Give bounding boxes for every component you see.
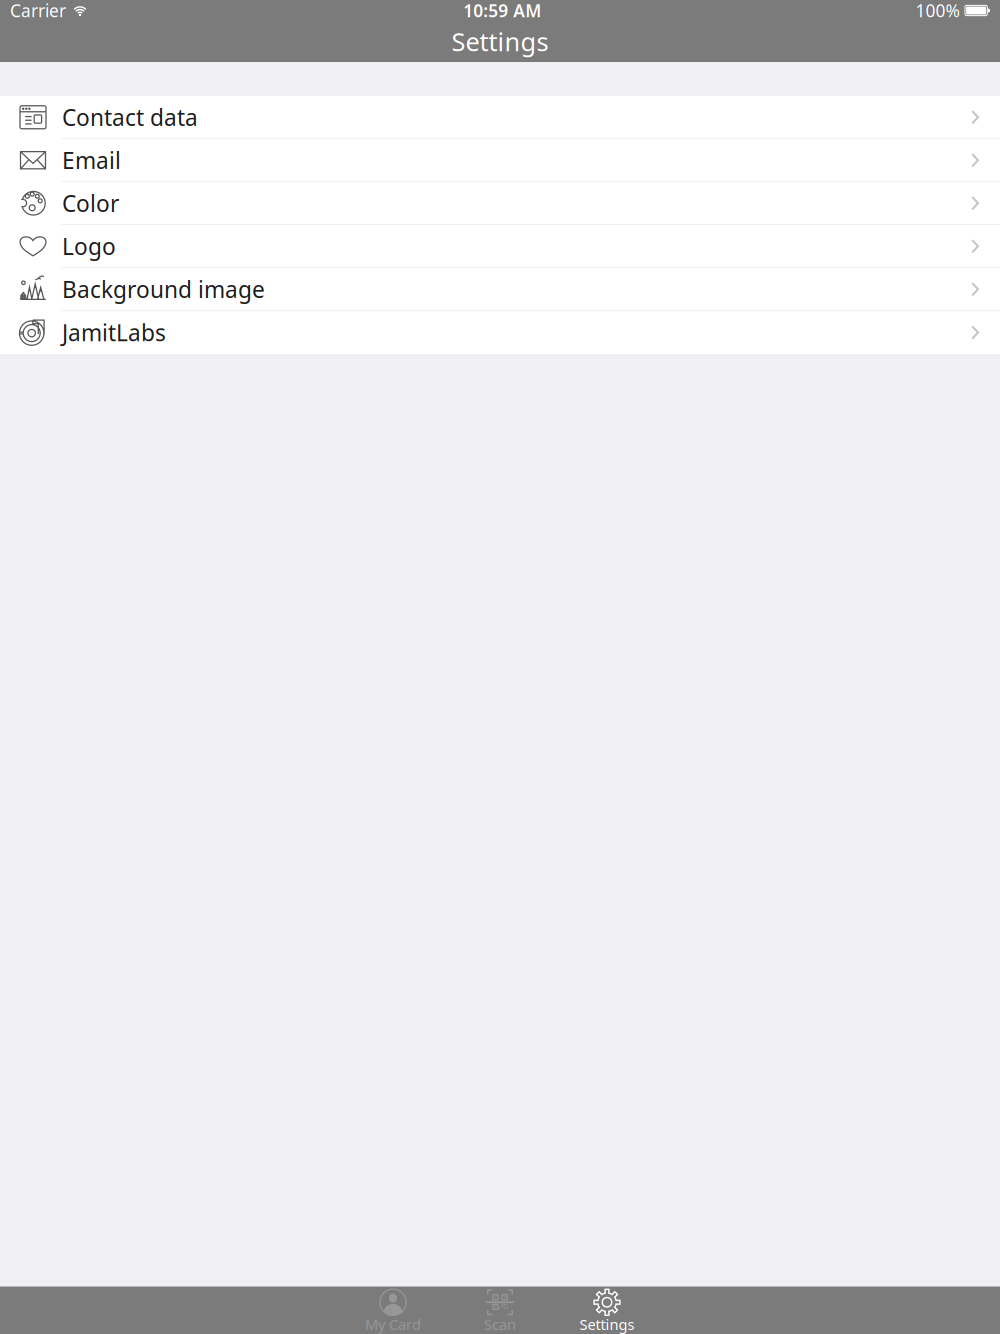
button[interactable]: My Card — [339, 1286, 446, 1334]
button[interactable]: Logo — [0, 225, 1000, 268]
button[interactable]: JamitLabs — [0, 311, 1000, 354]
staticText: Background image — [62, 274, 265, 304]
staticText: Scan — [484, 1314, 516, 1334]
staticText: Contact data — [62, 102, 198, 132]
staticText: 100% — [915, 0, 959, 22]
staticText: Carrier — [10, 0, 66, 22]
staticText: Logo — [62, 231, 116, 261]
button[interactable]: Settings — [553, 1286, 660, 1334]
staticText: My Card — [365, 1314, 421, 1334]
staticText: Settings — [451, 25, 548, 58]
button[interactable]: Color — [0, 182, 1000, 225]
button[interactable]: Contact data — [0, 96, 1000, 139]
staticText: Settings — [579, 1314, 634, 1334]
button[interactable]: Background image — [0, 268, 1000, 311]
staticText: Color — [62, 188, 119, 218]
button[interactable]: Email — [0, 139, 1000, 182]
staticText: 10:59 AM — [463, 0, 541, 22]
staticText: JamitLabs — [62, 317, 166, 347]
button[interactable]: Scan — [446, 1286, 553, 1334]
staticText: Email — [62, 145, 121, 175]
